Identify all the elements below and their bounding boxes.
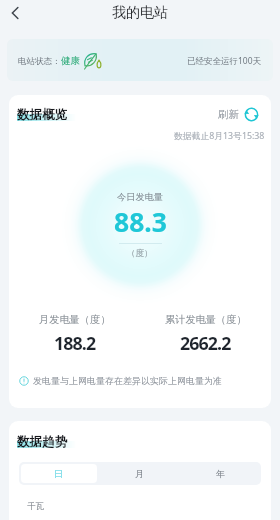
staticText: 电站状态： bbox=[18, 56, 61, 67]
button[interactable]: Back bbox=[3, 1, 27, 25]
staticText: 88.3 bbox=[114, 204, 167, 240]
staticText: 发电量与上网电量存在差异以实际上网电量为准 bbox=[33, 375, 222, 386]
staticText: 188.2 bbox=[54, 331, 96, 355]
staticText: 月发电量（度） bbox=[39, 313, 111, 326]
staticText: （度） bbox=[127, 248, 153, 259]
staticText: 健康 bbox=[61, 55, 80, 67]
button[interactable]: 刷新 bbox=[218, 106, 259, 122]
button[interactable]: 月 bbox=[101, 464, 178, 483]
staticText: 年 bbox=[216, 468, 226, 480]
button[interactable]: 年 bbox=[182, 464, 259, 483]
staticText: 数据截止8月13号15:38 bbox=[174, 130, 265, 142]
staticText: 数据概览 bbox=[17, 107, 68, 123]
staticText: 刷新 bbox=[218, 108, 239, 121]
staticText: 已经安全运行100天 bbox=[187, 55, 262, 67]
staticText: 千瓦 bbox=[27, 501, 44, 512]
staticText: 我的电站 bbox=[112, 4, 168, 22]
staticText: 月 bbox=[135, 468, 145, 480]
staticText: 日 bbox=[54, 468, 64, 480]
staticText: 2662.2 bbox=[180, 331, 231, 355]
staticText: 今日发电量 bbox=[117, 191, 163, 203]
other: Refresh bbox=[243, 106, 259, 122]
staticText: 累计发电量（度） bbox=[165, 313, 247, 326]
button[interactable]: 日 bbox=[21, 464, 97, 483]
staticText: 数据趋势 bbox=[17, 434, 68, 450]
